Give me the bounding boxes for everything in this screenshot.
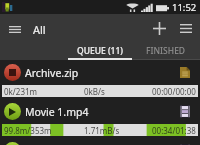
staticText: All — [33, 22, 46, 37]
staticText: Archive.zip — [25, 66, 79, 80]
staticText: 1.71mB/s — [84, 125, 120, 136]
staticText: Movie 1.mp4 — [25, 105, 89, 119]
staticText: 11:52 — [172, 1, 197, 14]
button[interactable]: Archive.zip — [0, 60, 200, 99]
button[interactable]: Add new download — [146, 14, 172, 42]
staticText: 0kB/s — [84, 86, 105, 97]
button[interactable]: FINISHED — [132, 42, 200, 60]
button[interactable]: QUEUE (11) — [68, 42, 132, 60]
button[interactable]: Open navigation drawer — [0, 14, 30, 42]
staticText: FINISHED — [146, 45, 186, 57]
staticText: 99.8m/353m — [4, 125, 52, 136]
staticText: 00:00/00:00 — [152, 86, 196, 97]
button[interactable]: Movie 1.mp4 — [0, 99, 200, 138]
button[interactable]: Movie 2.mp4 — [0, 138, 200, 145]
button[interactable]: More options — [172, 14, 200, 42]
staticText: 0k/231m — [4, 86, 38, 97]
staticText: 00:34/01:38 — [152, 125, 196, 136]
staticText: QUEUE (11) — [77, 45, 123, 57]
